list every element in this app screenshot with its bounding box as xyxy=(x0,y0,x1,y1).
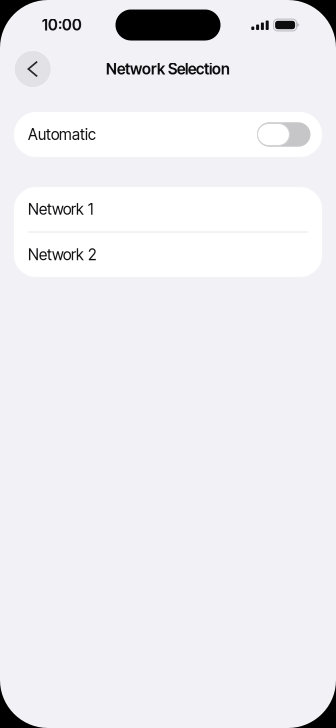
staticText: Network Selection xyxy=(106,60,230,78)
button[interactable]: Automatic xyxy=(14,112,322,157)
button[interactable]: Back xyxy=(14,50,51,88)
staticText: 10:00 xyxy=(42,16,82,34)
staticText: Network 2 xyxy=(28,245,97,264)
button[interactable]: Network 2 xyxy=(14,232,322,277)
staticText: Automatic xyxy=(28,125,96,144)
button[interactable]: Network 1 xyxy=(14,187,322,231)
staticText: Network 1 xyxy=(28,200,93,219)
